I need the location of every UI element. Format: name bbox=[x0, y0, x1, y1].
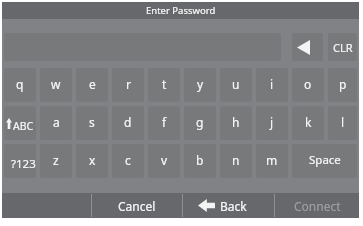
button[interactable]: p bbox=[328, 68, 357, 102]
staticText: b bbox=[196, 152, 204, 168]
staticText: c bbox=[125, 152, 131, 168]
staticText: d bbox=[124, 114, 132, 130]
button[interactable]: m bbox=[256, 144, 288, 178]
button[interactable]: Back bbox=[183, 193, 274, 218]
staticText: o bbox=[304, 76, 312, 92]
button[interactable]: a bbox=[40, 106, 72, 140]
button[interactable]: f bbox=[148, 106, 180, 140]
button[interactable]: Space bbox=[292, 144, 357, 178]
staticText: i bbox=[270, 76, 274, 92]
staticText: ?123 bbox=[11, 156, 36, 172]
button[interactable]: w bbox=[40, 68, 72, 102]
button[interactable]: z bbox=[40, 144, 72, 178]
staticText: f bbox=[162, 114, 167, 130]
staticText: Back bbox=[220, 198, 247, 214]
staticText: s bbox=[89, 114, 95, 130]
button[interactable]: Cancel bbox=[92, 193, 182, 218]
staticText: u bbox=[232, 76, 240, 92]
button[interactable]: e bbox=[76, 68, 108, 102]
staticText: w bbox=[51, 76, 61, 92]
staticText: l bbox=[341, 114, 345, 130]
staticText: g bbox=[196, 114, 204, 130]
button[interactable]: x bbox=[76, 144, 108, 178]
staticText: y bbox=[197, 76, 204, 92]
button[interactable]: ?123 bbox=[4, 144, 36, 178]
button[interactable]: n bbox=[220, 144, 252, 178]
button[interactable]: u bbox=[220, 68, 252, 102]
staticText: t bbox=[162, 76, 167, 92]
staticText: v bbox=[161, 152, 168, 168]
staticText: Enter Password bbox=[146, 4, 216, 17]
button[interactable]: d bbox=[112, 106, 144, 140]
button[interactable]: CLR bbox=[328, 33, 357, 61]
staticText: r bbox=[126, 76, 131, 92]
staticText: Space bbox=[309, 152, 341, 168]
staticText: ABC bbox=[13, 119, 34, 133]
button[interactable]: Connect bbox=[275, 193, 359, 218]
button[interactable]: y bbox=[184, 68, 216, 102]
button[interactable]: r bbox=[112, 68, 144, 102]
staticText: a bbox=[53, 114, 60, 130]
staticText: z bbox=[53, 152, 59, 168]
button[interactable]: l bbox=[328, 106, 357, 140]
button[interactable]: Backspace bbox=[292, 33, 323, 61]
staticText: q bbox=[16, 76, 24, 92]
button[interactable]: k bbox=[292, 106, 324, 140]
staticText: CLR bbox=[333, 40, 353, 55]
staticText: k bbox=[305, 114, 312, 130]
button[interactable]: h bbox=[220, 106, 252, 140]
staticText: Cancel bbox=[118, 198, 156, 214]
button[interactable]: i bbox=[256, 68, 288, 102]
button[interactable]: s bbox=[76, 106, 108, 140]
staticText: n bbox=[232, 152, 240, 168]
button[interactable]: g bbox=[184, 106, 216, 140]
button[interactable]: t bbox=[148, 68, 180, 102]
button[interactable]: q bbox=[4, 68, 36, 102]
staticText: e bbox=[89, 76, 96, 92]
button[interactable]: j bbox=[256, 106, 288, 140]
staticText: p bbox=[339, 76, 347, 92]
staticText: Connect bbox=[294, 198, 341, 214]
staticText: j bbox=[270, 114, 274, 130]
staticText: h bbox=[232, 114, 240, 130]
button[interactable]: ABC bbox=[4, 106, 36, 140]
button[interactable]: v bbox=[148, 144, 180, 178]
button[interactable]: b bbox=[184, 144, 216, 178]
button[interactable]: c bbox=[112, 144, 144, 178]
button[interactable]: o bbox=[292, 68, 324, 102]
staticText: m bbox=[266, 152, 278, 168]
staticText: x bbox=[89, 152, 96, 168]
